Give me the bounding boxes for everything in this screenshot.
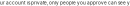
- staticText: ur account is private, only people you a…: [0, 0, 130, 6]
